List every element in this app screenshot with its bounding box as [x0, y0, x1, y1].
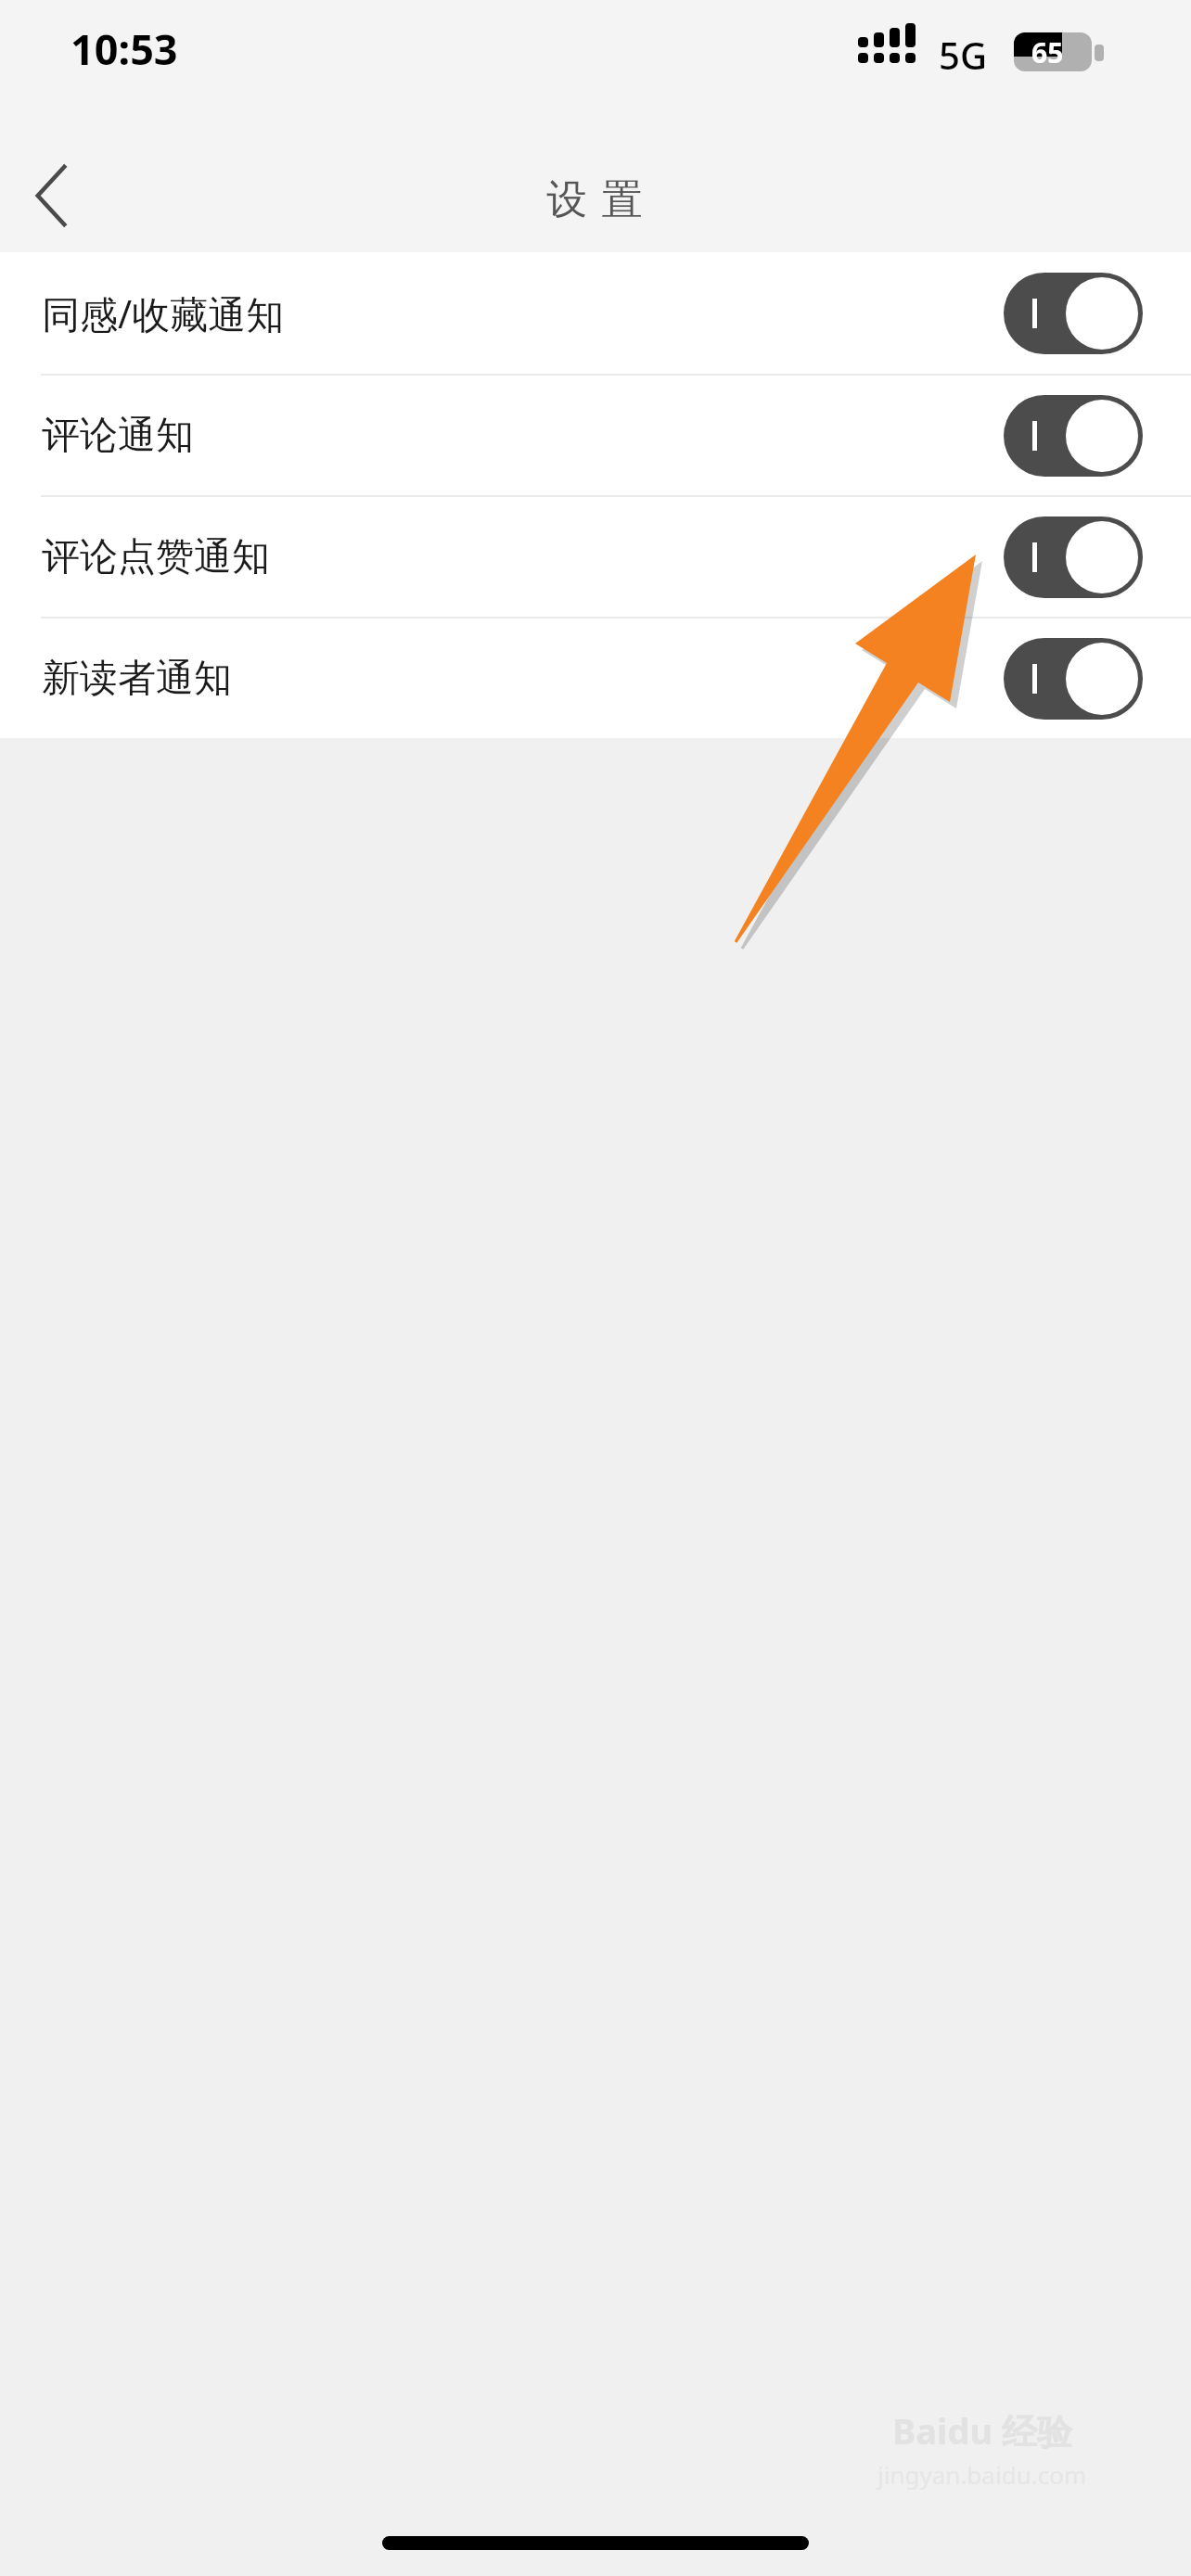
staticText: 新读者通知: [42, 655, 232, 703]
staticText: Baidu 经验: [892, 2406, 1072, 2455]
button[interactable]: 评论点赞通知: [0, 497, 1191, 617]
staticText: jingyan.baidu.com: [877, 2458, 1087, 2491]
staticText: 同感/收藏通知: [42, 287, 285, 339]
staticText: 评论点赞通知: [42, 533, 270, 581]
button[interactable]: Back: [0, 145, 102, 247]
button[interactable]: 评论通知: [0, 376, 1191, 495]
button[interactable]: Toggle on: [1004, 273, 1143, 354]
staticText: 10:53: [70, 20, 178, 77]
staticText: 5G: [939, 30, 987, 80]
staticText: 评论通知: [42, 412, 194, 460]
button[interactable]: Toggle on: [1004, 395, 1143, 477]
staticText: 65: [1031, 33, 1064, 71]
staticText: 设 置: [546, 170, 645, 225]
button[interactable]: Toggle on: [1004, 516, 1143, 598]
button[interactable]: 新读者通知: [0, 618, 1191, 738]
button[interactable]: 同感/收藏通知: [0, 252, 1191, 374]
button[interactable]: Toggle on: [1004, 638, 1143, 720]
